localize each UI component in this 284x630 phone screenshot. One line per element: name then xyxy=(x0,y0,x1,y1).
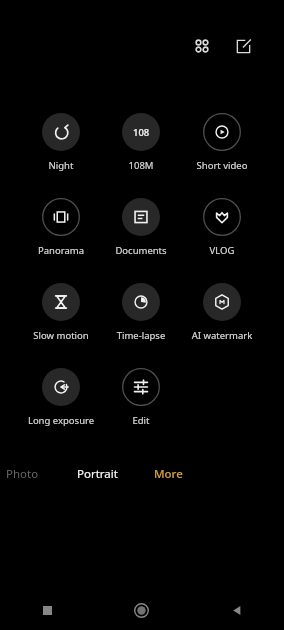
staticText: VLOG xyxy=(177,244,267,257)
button[interactable]: Edit watermark xyxy=(226,29,260,63)
staticText: Short video xyxy=(177,159,267,172)
button[interactable]: 108 xyxy=(96,113,186,172)
staticText: 108M xyxy=(96,159,186,172)
button[interactable]: Long exposure xyxy=(16,368,106,427)
button[interactable]: Recents xyxy=(0,590,94,630)
button[interactable]: More xyxy=(148,462,189,486)
button[interactable]: Back xyxy=(189,590,284,630)
staticText: Portrait xyxy=(77,466,118,482)
button[interactable]: Edit xyxy=(96,368,186,427)
staticText: Photo xyxy=(6,466,39,482)
button[interactable]: Home xyxy=(94,590,189,630)
button[interactable]: VLOG xyxy=(177,198,267,257)
staticText: Time-lapse xyxy=(96,329,186,342)
button[interactable]: Time-lapse xyxy=(96,283,186,342)
staticText: 108 xyxy=(133,126,150,139)
staticText: Edit xyxy=(96,414,186,427)
staticText: More xyxy=(154,466,183,482)
staticText: AI watermark xyxy=(177,329,267,342)
button[interactable]: Short video xyxy=(177,113,267,172)
button[interactable]: Documents xyxy=(96,198,186,257)
staticText: Long exposure xyxy=(16,414,106,427)
button[interactable]: Slow motion xyxy=(16,283,106,342)
button[interactable]: Photo xyxy=(0,462,45,486)
button[interactable]: Portrait xyxy=(71,462,124,486)
staticText: Documents xyxy=(96,244,186,257)
button[interactable]: Panorama xyxy=(16,198,106,257)
button[interactable]: Night xyxy=(16,113,106,172)
button[interactable]: Camera modes grid xyxy=(185,29,219,63)
staticText: Slow motion xyxy=(16,329,106,342)
staticText: Panorama xyxy=(16,244,106,257)
button[interactable]: AI watermark xyxy=(177,283,267,342)
staticText: Night xyxy=(16,159,106,172)
